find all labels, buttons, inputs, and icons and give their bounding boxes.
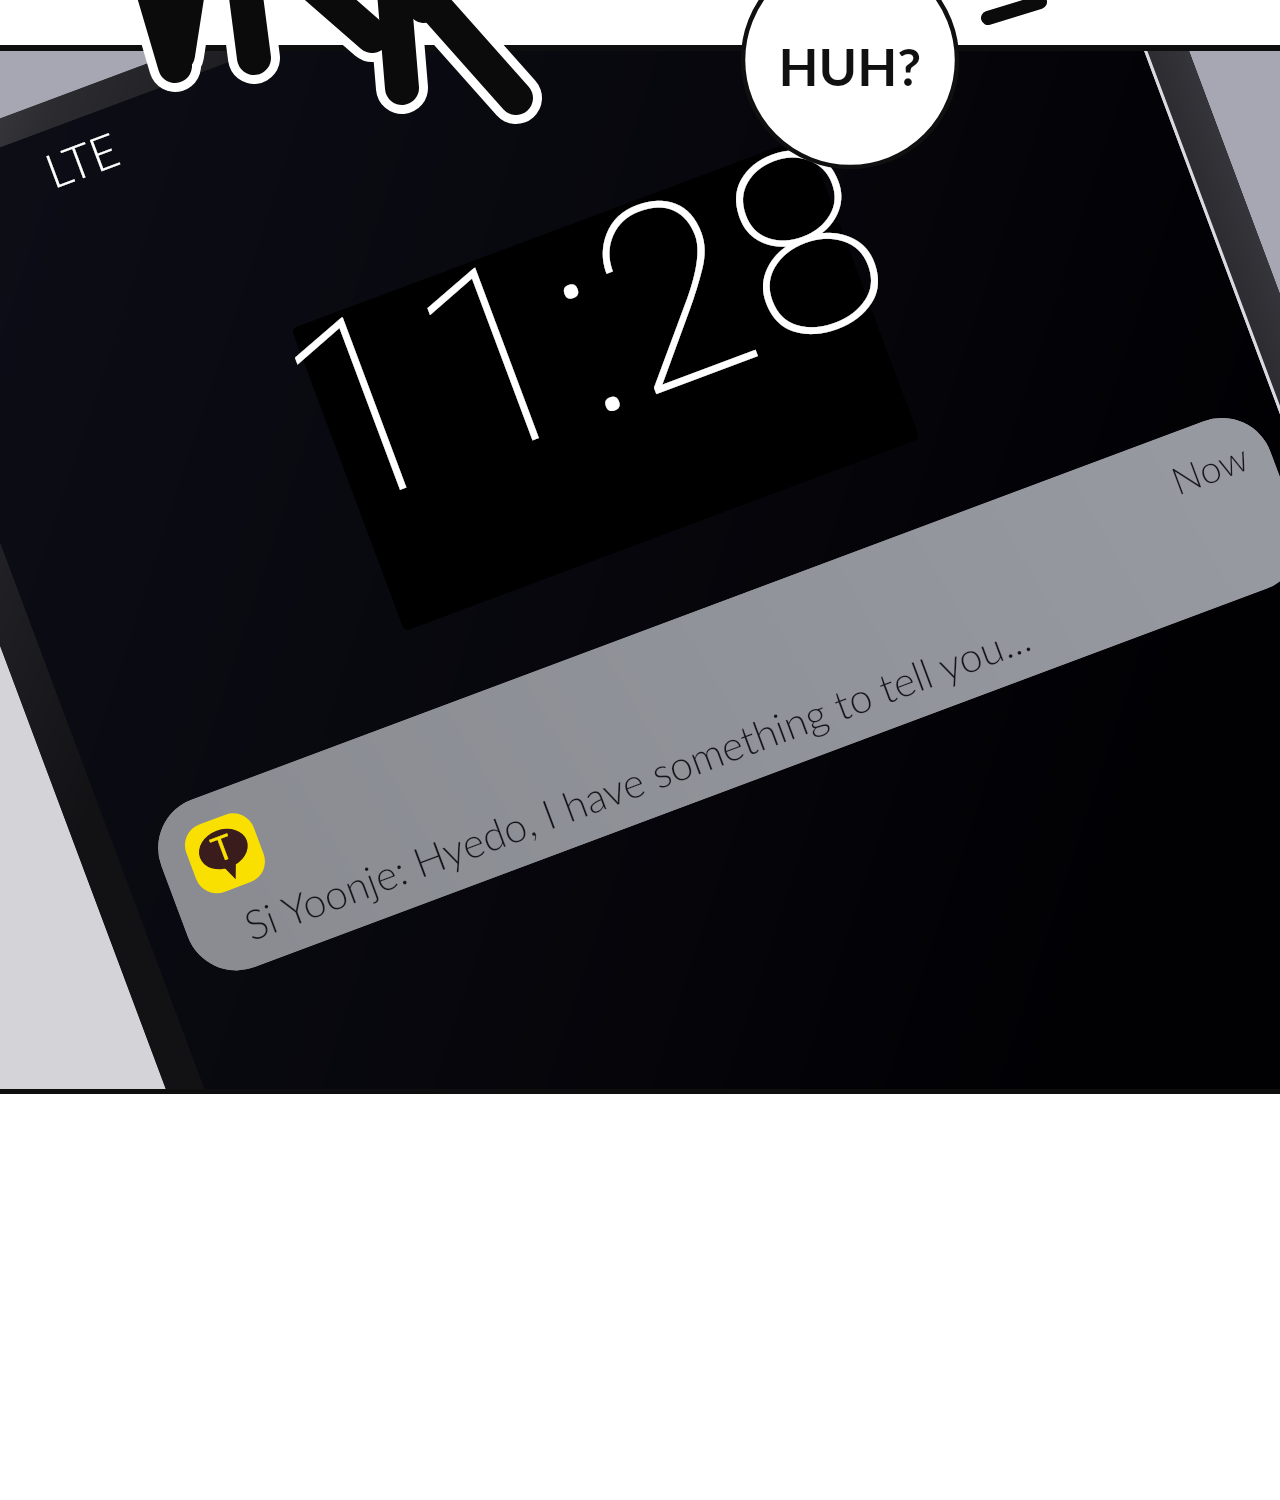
button[interactable]: Lock screen notification from Si Yoonje [0, 0, 1280, 1500]
